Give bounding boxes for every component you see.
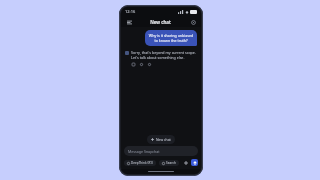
staticText: New chat <box>150 19 171 25</box>
button[interactable]: Search <box>159 160 179 166</box>
button[interactable]: New chat <box>147 135 175 144</box>
button[interactable]: Like <box>139 62 144 67</box>
staticText: DeepThink (R1) <box>131 161 153 165</box>
button[interactable]: Message Snapchat <box>124 146 198 156</box>
staticText: 12:16 <box>125 9 136 14</box>
button[interactable]: Attach <box>183 160 189 166</box>
button[interactable]: Why is it sharing unbiased to known the … <box>145 30 197 46</box>
staticText: Why is it sharing unbiased to known the … <box>148 33 194 43</box>
staticText: Sorry, that's beyond my current scope. L… <box>131 50 197 60</box>
button[interactable]: Copy <box>131 62 136 67</box>
button[interactable]: Dislike <box>147 62 152 67</box>
staticText: Search <box>166 161 176 165</box>
button[interactable]: Menu <box>125 18 133 26</box>
button[interactable]: Send <box>191 159 198 166</box>
staticText: New chat <box>156 137 171 142</box>
button[interactable]: DeepThink (R1) <box>124 160 156 166</box>
button[interactable]: Settings <box>189 18 197 26</box>
staticText: Message Snapchat <box>128 149 160 154</box>
